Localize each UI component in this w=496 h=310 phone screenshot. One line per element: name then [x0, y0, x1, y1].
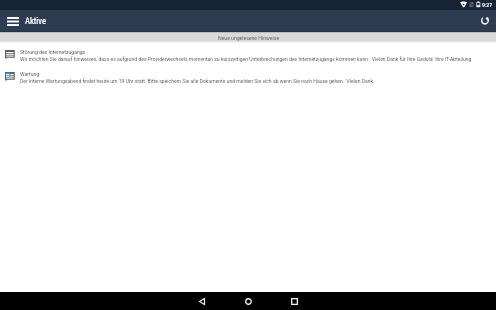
staticText: Wartung — [20, 71, 40, 77]
staticText: 9:27 — [482, 1, 493, 8]
button[interactable]: Wartung — [0, 65, 496, 87]
button[interactable]: Back — [187, 292, 217, 310]
staticText: Störung des Internetzugangs — [20, 49, 86, 55]
staticText: Wir möchten Sie darauf hinweisen, dass e… — [20, 56, 472, 62]
staticText: Aktive — [25, 16, 46, 26]
staticText: Neue ungelesene Hinweise — [218, 35, 280, 41]
button[interactable]: Menu — [0, 10, 26, 32]
staticText: Der interne Wartungsabend findet heute u… — [20, 78, 375, 84]
button[interactable]: Home — [233, 292, 263, 310]
button[interactable]: Refresh — [474, 10, 496, 32]
button[interactable]: Recent apps — [279, 292, 309, 310]
button[interactable]: Störung des Internetzugangs — [0, 43, 496, 65]
